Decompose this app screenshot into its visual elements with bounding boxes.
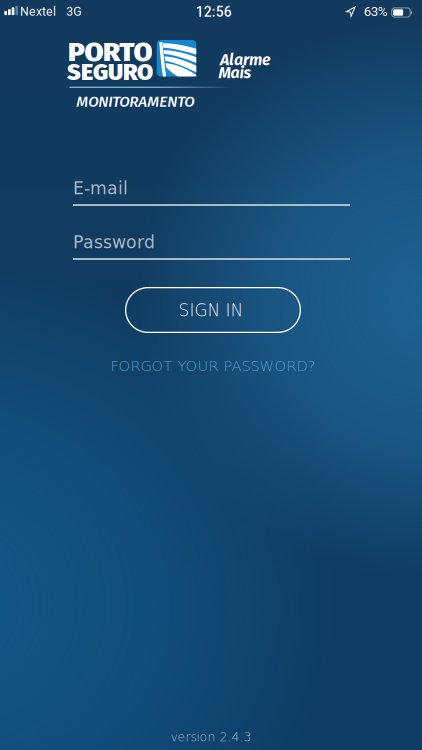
staticText: SEGURO xyxy=(67,58,153,86)
button[interactable]: Password xyxy=(73,232,350,260)
button[interactable]: FORGOT YOUR PASSWORD? xyxy=(73,356,353,376)
staticText: PORTO xyxy=(71,37,148,68)
staticText: 63% xyxy=(364,4,388,19)
staticText: E-mail xyxy=(73,178,128,198)
staticText: MONITORAMENTO xyxy=(76,92,194,111)
staticText: Alarme xyxy=(220,50,271,69)
button[interactable]: SIGN IN xyxy=(125,287,301,333)
staticText: version 2.4.3 xyxy=(170,730,251,744)
staticText: Password xyxy=(73,232,155,252)
staticText: 3G xyxy=(66,4,81,19)
staticText: Nextel xyxy=(20,4,56,19)
staticText: FORGOT YOUR PASSWORD? xyxy=(110,357,315,375)
staticText: SIGN IN xyxy=(178,301,243,320)
staticText: Mais xyxy=(218,63,251,83)
button[interactable]: E-mail xyxy=(73,178,350,206)
staticText: 12:56 xyxy=(196,4,232,20)
